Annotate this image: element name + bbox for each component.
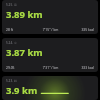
button[interactable]: 5.24. 수 [2, 38, 98, 72]
staticText: 7'15" / km [36, 27, 65, 31]
staticText: 3.89 km [6, 8, 43, 21]
staticText: 335 kcal [65, 27, 94, 31]
staticText: 5.25. 목 [6, 3, 17, 7]
staticText: 3.87 km [6, 46, 43, 59]
button[interactable]: 5.23. 화 [2, 76, 98, 100]
staticText: 5.23. 화 [6, 79, 17, 83]
staticText: 5.24. 수 [6, 41, 17, 45]
button[interactable]: 5.25. 목 [2, 0, 98, 34]
staticText: 29.05 [6, 65, 36, 69]
staticText: 28 ft [6, 27, 36, 31]
staticText: 7'31" / km [36, 65, 65, 69]
staticText: 333 kcal [65, 65, 94, 69]
staticText: 3.9 km [6, 84, 38, 97]
